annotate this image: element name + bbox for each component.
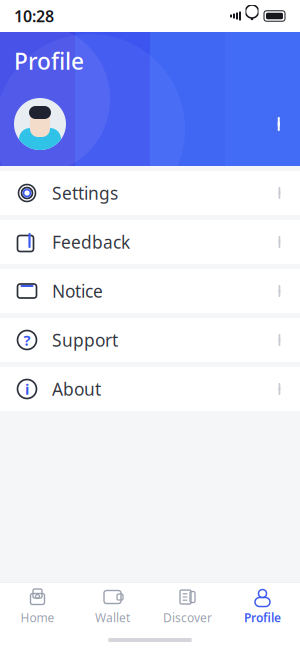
staticText: Home	[20, 609, 54, 625]
staticText: Notice	[52, 279, 103, 302]
staticText: i	[25, 379, 29, 399]
button[interactable]: Wallet	[75, 585, 150, 629]
staticText: Settings	[52, 181, 118, 204]
button[interactable]: Settings	[0, 171, 300, 215]
staticText: 10:28	[14, 5, 54, 27]
staticText: Feedback	[52, 230, 130, 253]
staticText: About	[52, 377, 101, 400]
button[interactable]: Profile	[0, 32, 300, 166]
staticText: Wallet	[95, 609, 130, 625]
button[interactable]: Profile	[225, 585, 300, 629]
staticText: Support	[52, 328, 118, 351]
button[interactable]: Discover	[150, 585, 225, 629]
button[interactable]: ?	[0, 318, 300, 362]
button[interactable]: Notice	[0, 269, 300, 313]
button[interactable]: Home	[0, 585, 75, 629]
button[interactable]: i	[0, 367, 300, 411]
staticText: Profile	[244, 609, 281, 625]
staticText: ?	[23, 330, 30, 350]
staticText: Profile	[14, 46, 84, 76]
button[interactable]: Feedback	[0, 220, 300, 264]
staticText: Discover	[163, 609, 212, 625]
